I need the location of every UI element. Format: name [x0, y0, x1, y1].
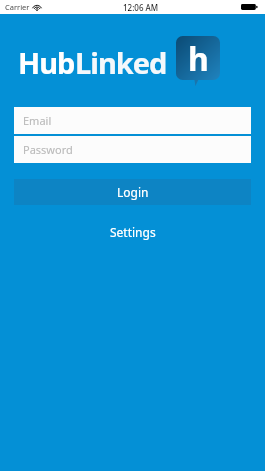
staticText: Login [117, 184, 149, 200]
other: Wi-Fi signal [33, 4, 41, 11]
other: Battery full [241, 3, 258, 11]
staticText: Hub [18, 43, 75, 82]
staticText: Email [23, 113, 52, 128]
button[interactable]: Settings [0, 221, 265, 243]
staticText: Password [23, 142, 73, 157]
staticText: Settings [110, 224, 156, 240]
staticText: Carrier [5, 2, 30, 12]
staticText: 12:06 AM [123, 2, 159, 13]
button[interactable]: Login [14, 179, 251, 205]
button[interactable]: Email [14, 107, 251, 134]
button[interactable]: Password [14, 136, 251, 163]
staticText: h [188, 37, 209, 81]
staticText: Linked [75, 43, 167, 82]
